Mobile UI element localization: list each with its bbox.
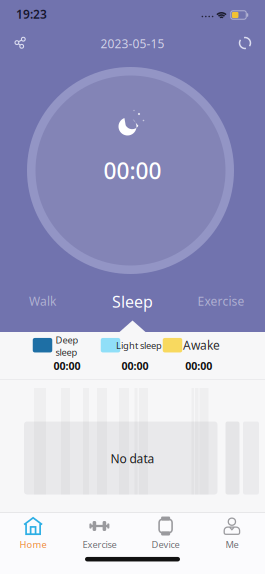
button[interactable]: Walk [29,293,56,309]
staticText: Awake [183,337,220,353]
staticText: 19:23 [16,6,47,22]
staticText: Device [152,538,180,551]
staticText: 00:00 [103,155,161,185]
staticText: Walk [29,293,56,309]
staticText: 00:00 [53,359,80,373]
button[interactable]: Device [138,517,194,551]
button[interactable]: Share [13,35,27,49]
button[interactable]: 2023-05-15 [100,35,164,51]
staticText: No data [110,450,154,466]
staticText: Deep [55,334,78,346]
staticText: Sleep [112,291,153,312]
button[interactable]: Me [204,517,260,551]
button[interactable]: Sleep [112,291,153,312]
button[interactable]: Exercise [197,293,244,309]
staticText: 00:00 [121,359,148,373]
staticText: Exercise [82,538,116,551]
button[interactable]: Exercise [71,517,127,551]
button[interactable]: Refresh [238,36,251,49]
staticText: Exercise [197,293,244,309]
staticText: 00:00 [185,359,212,373]
staticText: Light sleep [116,339,162,352]
staticText: sleep [55,346,77,358]
staticText: 2023-05-15 [100,35,164,51]
button[interactable]: Home [5,517,61,551]
staticText: Me [225,538,238,551]
staticText: Home [20,538,47,551]
